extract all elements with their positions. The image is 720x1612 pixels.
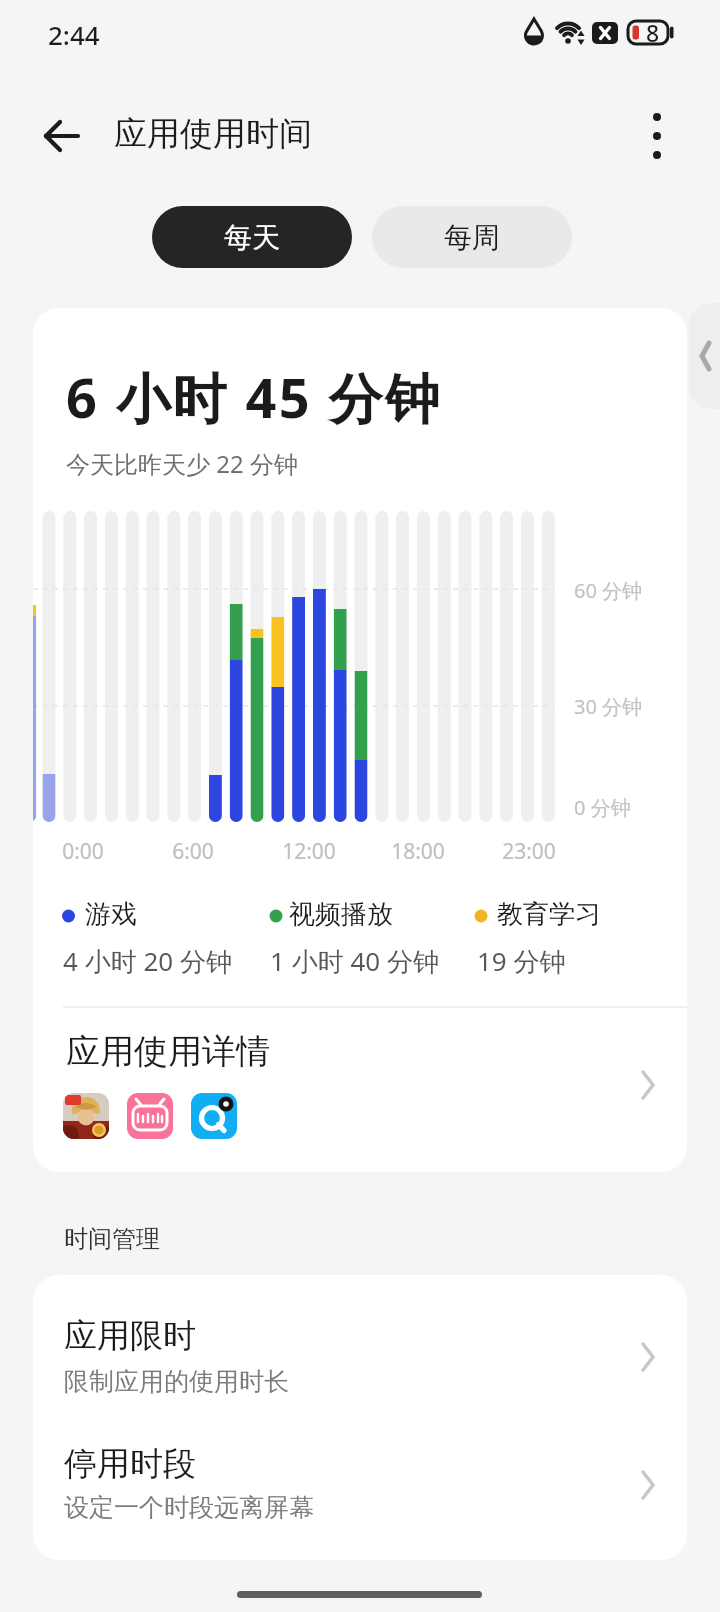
staticText: 今天比昨天少 22 分钟	[66, 447, 298, 480]
staticText: 应用使用详情	[66, 1030, 270, 1073]
staticText: 应用限时	[64, 1315, 196, 1357]
button[interactable]	[634, 110, 680, 162]
button[interactable]	[33, 1008, 687, 1172]
staticText: 12:00	[282, 837, 336, 866]
button[interactable]	[33, 1417, 687, 1560]
staticText: 18:00	[391, 837, 445, 866]
staticText: 4 小时 20 分钟	[63, 943, 232, 979]
staticText: 停用时段	[64, 1443, 196, 1485]
button[interactable]: 每周	[372, 206, 572, 268]
staticText: 60 分钟	[574, 577, 643, 604]
staticText: 23:00	[502, 837, 556, 866]
staticText: 19 分钟	[477, 943, 566, 979]
button[interactable]	[36, 110, 88, 162]
staticText: 30 分钟	[574, 693, 643, 720]
staticText: 2:44	[48, 17, 100, 52]
staticText: 8	[646, 17, 660, 48]
staticText: 0:00	[62, 837, 104, 866]
button[interactable]: 每天	[152, 206, 352, 268]
staticText: 应用使用时间	[114, 113, 312, 155]
staticText: 教育学习	[497, 898, 601, 931]
button[interactable]	[63, 1093, 109, 1139]
button[interactable]	[191, 1093, 237, 1139]
staticText: 视频播放	[289, 898, 393, 931]
button[interactable]	[33, 1275, 687, 1417]
staticText: 1 小时 40 分钟	[270, 943, 439, 979]
staticText: 每天	[224, 220, 280, 255]
staticText: 设定一个时段远离屏幕	[64, 1492, 314, 1523]
staticText: 限制应用的使用时长	[64, 1366, 289, 1397]
staticText: 时间管理	[64, 1224, 160, 1254]
staticText: 6 小时 45 分钟	[66, 360, 442, 434]
staticText: 每周	[444, 220, 500, 255]
button[interactable]	[689, 303, 720, 409]
button[interactable]	[127, 1093, 173, 1139]
staticText: 0 分钟	[574, 794, 631, 821]
staticText: 6:00	[172, 837, 214, 866]
staticText: 游戏	[85, 898, 137, 931]
